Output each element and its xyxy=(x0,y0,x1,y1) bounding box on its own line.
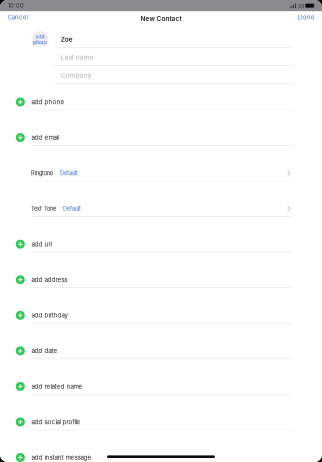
staticText: Default xyxy=(63,205,81,212)
button[interactable]: Cancel xyxy=(0,12,36,25)
staticText: New Contact xyxy=(140,15,181,22)
staticText: add date xyxy=(31,347,57,354)
button[interactable]: Add photo xyxy=(32,31,48,48)
staticText: add instant message xyxy=(31,454,91,461)
staticText: add xyxy=(36,34,45,39)
staticText: photo xyxy=(33,40,47,45)
staticText: Done xyxy=(298,13,315,21)
staticText: Zoe xyxy=(61,35,73,43)
staticText: add birthday xyxy=(31,312,67,319)
staticText: add related name xyxy=(31,383,82,390)
staticText: add address xyxy=(31,276,67,283)
staticText: Default xyxy=(60,170,78,176)
button[interactable]: add social profile xyxy=(0,395,322,430)
button[interactable]: add instant message xyxy=(0,430,322,462)
button[interactable]: add phone xyxy=(0,84,322,110)
staticText: add email xyxy=(31,134,58,141)
button[interactable]: add email xyxy=(0,110,322,146)
button[interactable]: add url xyxy=(0,217,322,253)
button[interactable]: add date xyxy=(0,324,322,359)
staticText: Ringtone xyxy=(31,170,53,176)
button[interactable]: Text Tone xyxy=(0,181,322,217)
button[interactable]: Company xyxy=(54,66,291,84)
staticText: Last name xyxy=(61,54,94,61)
button[interactable]: add address xyxy=(0,253,322,288)
staticText: Company xyxy=(61,72,92,79)
staticText: add social profile xyxy=(31,418,80,426)
staticText: add phone xyxy=(31,98,64,106)
button[interactable]: add birthday xyxy=(0,288,322,324)
button[interactable]: Zoe xyxy=(54,28,291,48)
staticText: add url xyxy=(31,240,51,248)
button[interactable]: Done xyxy=(290,12,322,25)
staticText: 10:00 xyxy=(8,2,24,9)
staticText: Text Tone xyxy=(31,205,56,212)
button[interactable]: add related name xyxy=(0,359,322,395)
button[interactable]: Ringtone xyxy=(0,146,322,181)
staticText: Cancel xyxy=(8,14,28,21)
button[interactable]: Last name xyxy=(54,48,291,66)
staticText: 33 xyxy=(298,2,304,9)
